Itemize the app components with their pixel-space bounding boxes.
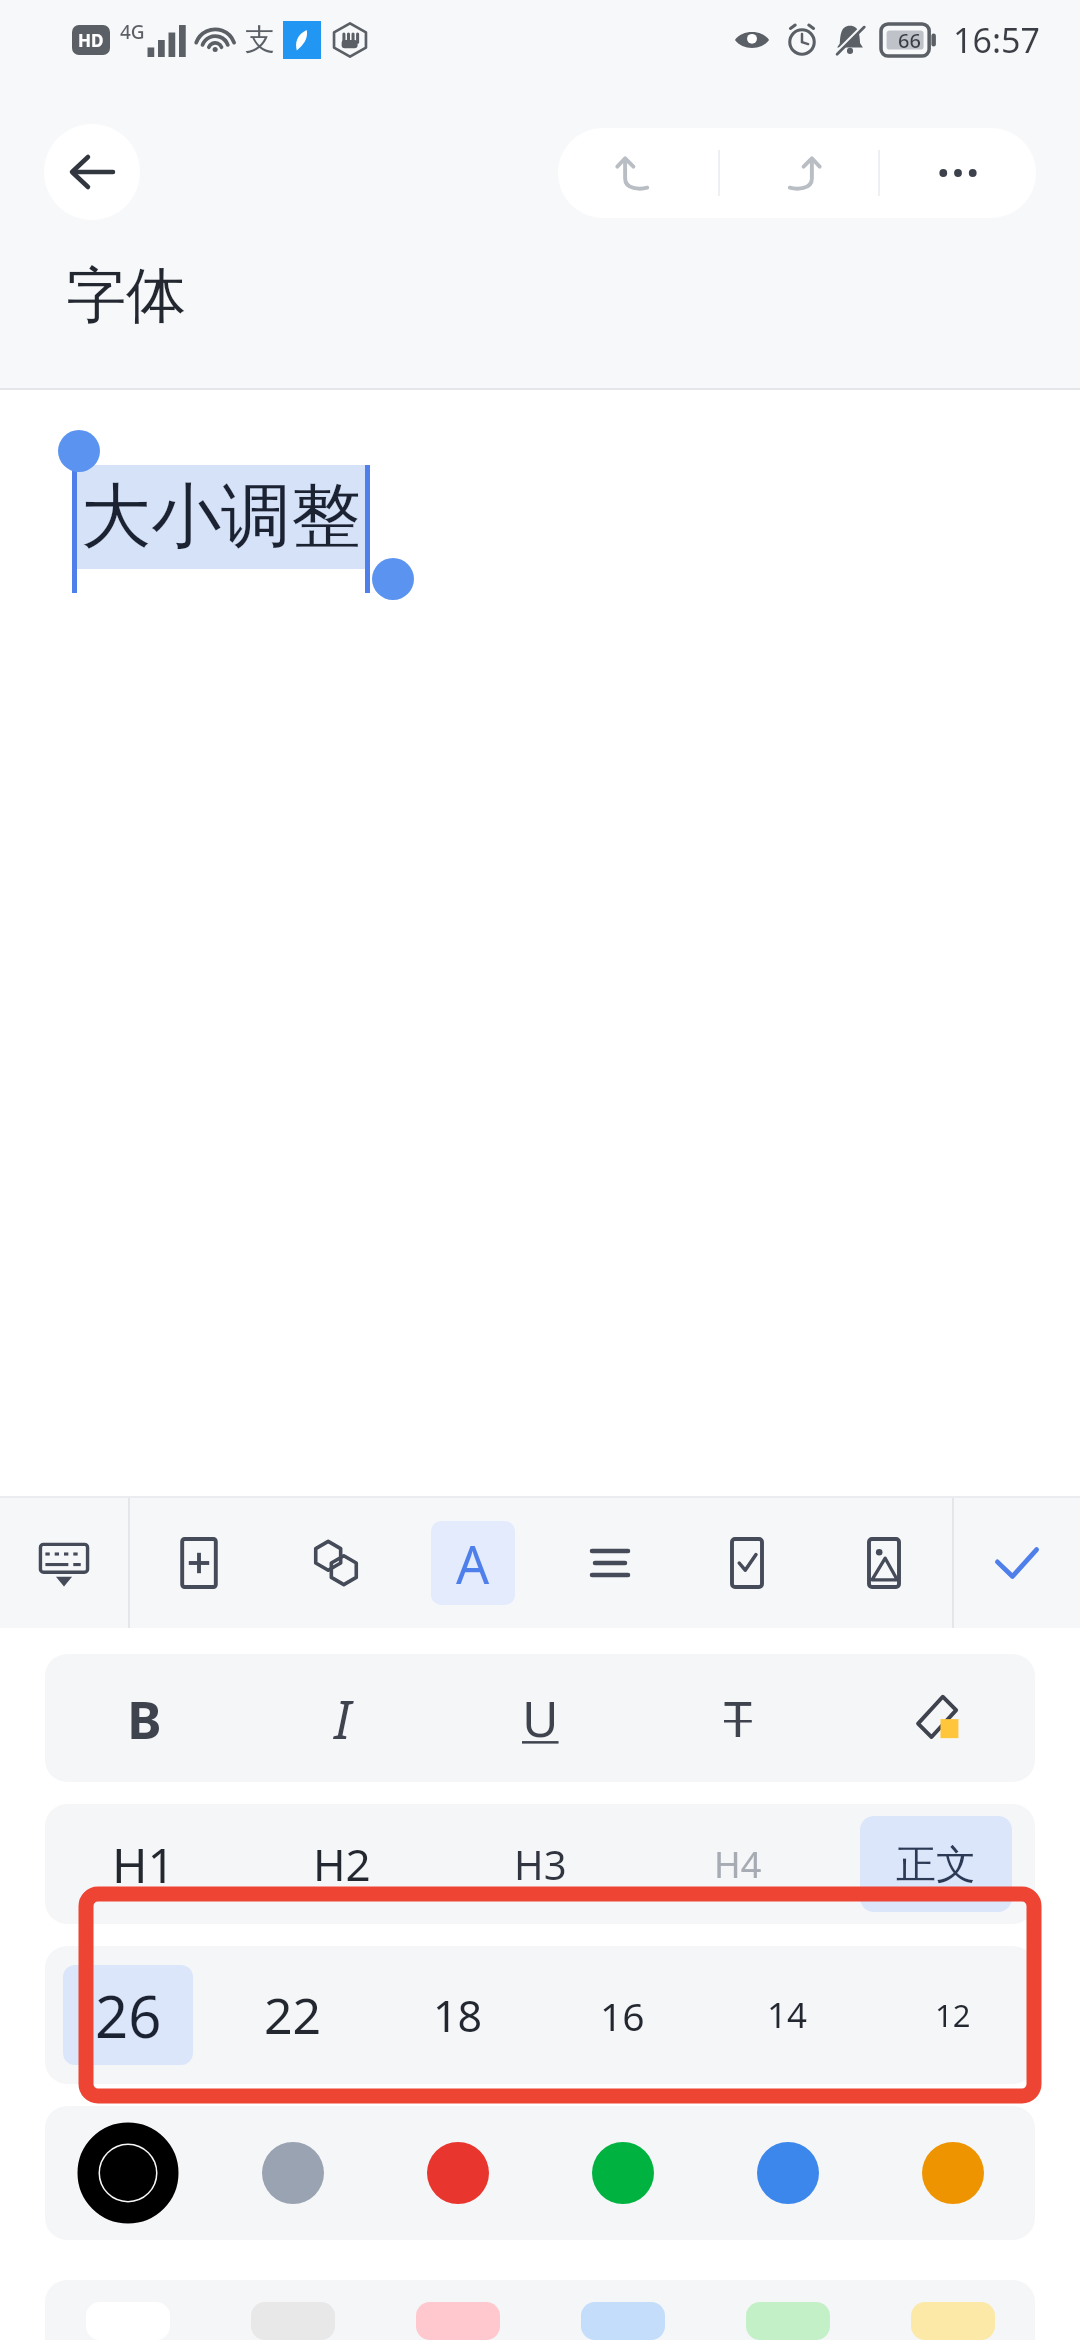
button[interactable]: Color	[540, 2106, 705, 2240]
staticText: 16	[600, 1989, 645, 2042]
button[interactable]: Color	[210, 2106, 375, 2240]
staticText: 支	[245, 21, 275, 59]
staticText: B	[127, 1683, 162, 1754]
button[interactable]: 12	[870, 1946, 1035, 2084]
button[interactable]: 正文	[837, 1804, 1035, 1924]
button[interactable]: 16	[540, 1946, 705, 2084]
button[interactable]: Undo	[558, 128, 718, 218]
button[interactable]: Checklist	[678, 1498, 815, 1628]
staticText: 字体	[66, 258, 186, 334]
button[interactable]	[372, 558, 414, 600]
button[interactable]: 26	[45, 1946, 210, 2084]
button[interactable]: H2	[243, 1804, 441, 1924]
staticText: 4G	[120, 19, 145, 45]
button[interactable]: Highlight	[837, 1654, 1035, 1782]
staticText: H2	[313, 1834, 371, 1894]
button[interactable]: Insert	[130, 1498, 267, 1628]
staticText: 26	[95, 1976, 162, 2055]
button[interactable]: More options	[880, 128, 1036, 218]
staticText: T	[724, 1684, 752, 1752]
staticText: 14	[767, 1991, 808, 2039]
button[interactable]: Text format	[404, 1498, 541, 1628]
button[interactable]: Link	[267, 1498, 404, 1628]
button[interactable]	[58, 430, 100, 472]
button[interactable]: Done	[954, 1498, 1080, 1628]
button[interactable]: Redo	[720, 128, 878, 218]
staticText: 12	[935, 1994, 971, 2036]
staticText: 正文	[896, 1839, 976, 1889]
button[interactable]: Strikethrough	[639, 1654, 837, 1782]
staticText: 22	[264, 1981, 322, 2049]
staticText: HD	[78, 29, 104, 52]
button[interactable]: Color	[870, 2106, 1035, 2240]
button[interactable]: Back	[44, 124, 140, 220]
staticText: 大小调整	[81, 473, 361, 561]
button[interactable]	[746, 2302, 830, 2340]
button[interactable]: Color	[705, 2106, 870, 2240]
button[interactable]: Align	[541, 1498, 678, 1628]
staticText: 66	[898, 27, 921, 54]
staticText: I	[334, 1683, 351, 1754]
button[interactable]	[416, 2302, 500, 2340]
button[interactable]: H3	[441, 1804, 639, 1924]
button[interactable]: Underline	[441, 1654, 639, 1782]
button[interactable]: 22	[210, 1946, 375, 2084]
button[interactable]: H4	[639, 1804, 837, 1924]
button[interactable]: 14	[705, 1946, 870, 2084]
button[interactable]: 18	[375, 1946, 540, 2084]
button[interactable]	[581, 2302, 665, 2340]
staticText: H1	[112, 1832, 176, 1897]
button[interactable]: Color	[375, 2106, 540, 2240]
staticText: H4	[714, 1840, 762, 1889]
staticText: A	[456, 1528, 490, 1599]
button[interactable]: Hide keyboard	[0, 1498, 128, 1628]
button[interactable]: H1	[45, 1804, 243, 1924]
staticText: 16:57	[953, 17, 1040, 63]
staticText: U	[522, 1684, 559, 1752]
staticText: 18	[433, 1986, 483, 2045]
staticText: H3	[514, 1837, 567, 1891]
button[interactable]: Image	[815, 1498, 952, 1628]
button[interactable]: Bold	[45, 1654, 243, 1782]
button[interactable]: Italic	[243, 1654, 441, 1782]
button[interactable]: Color	[45, 2106, 210, 2240]
button[interactable]	[251, 2302, 335, 2340]
button[interactable]	[911, 2302, 995, 2340]
